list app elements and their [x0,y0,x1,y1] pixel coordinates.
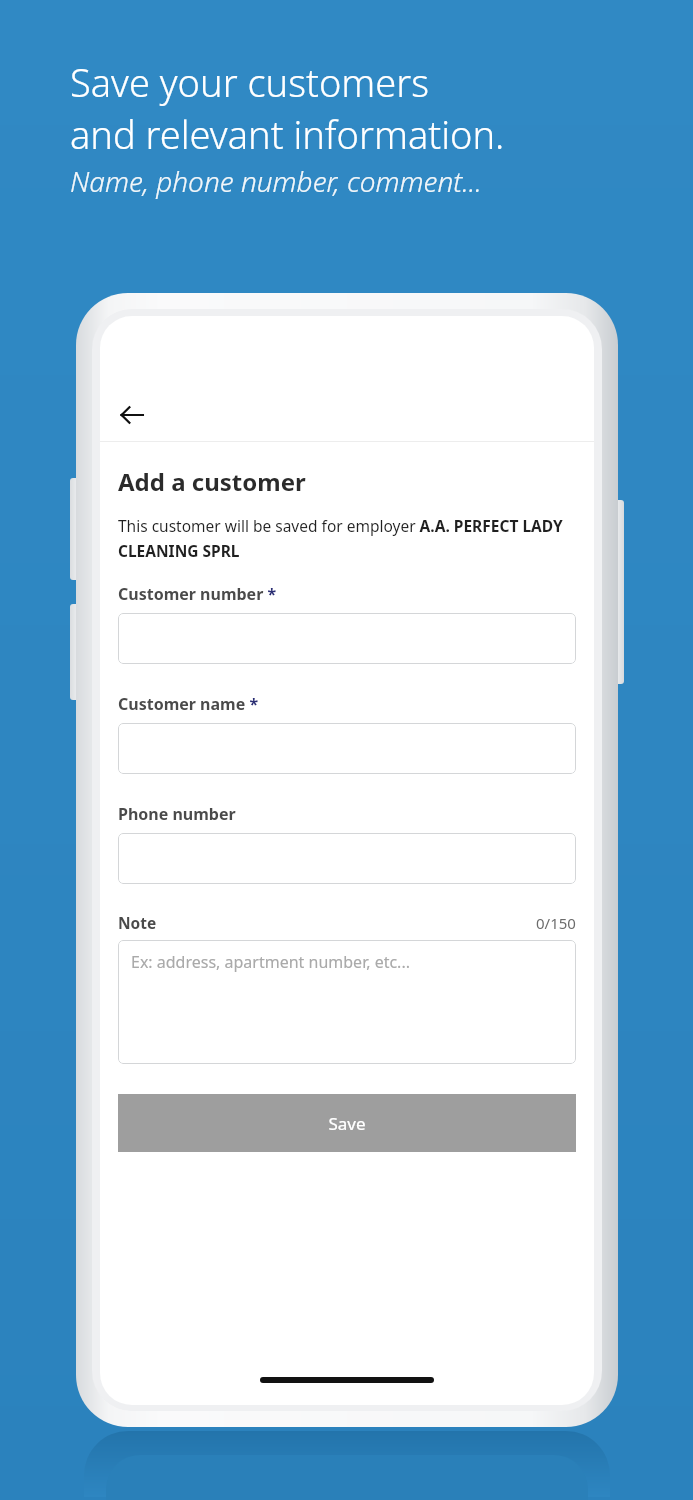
staticText: Customer number * [118,583,277,605]
staticText: This customer will be saved for employer… [118,515,576,561]
button[interactable]: Save [118,1094,576,1152]
button[interactable] [118,723,576,774]
staticText: Phone number [118,803,236,825]
button[interactable] [118,833,576,884]
staticText: Add a customer [118,465,306,498]
staticText: Save your customers [70,56,429,108]
button[interactable]: Back [106,389,158,441]
button[interactable]: Ex: address, apartment number, etc... [118,940,576,1064]
staticText: and relevant information. [70,108,505,160]
button[interactable] [118,613,576,664]
staticText: Name, phone number, comment... [70,162,482,200]
staticText: 0/150 [536,913,576,933]
staticText: Customer name * [118,693,259,715]
staticText: Note [118,912,157,933]
staticText: Save [328,1112,366,1135]
staticText: Ex: address, apartment number, etc... [131,951,410,973]
